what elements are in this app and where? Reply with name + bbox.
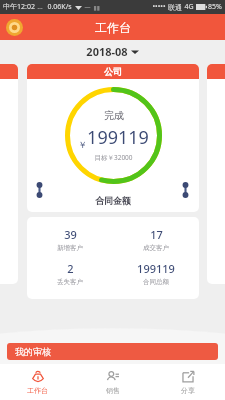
staticText: … — [37, 2, 43, 12]
button[interactable]: 公司 — [27, 64, 199, 212]
button[interactable]: 39 — [27, 227, 113, 252]
staticText: 工作台 — [95, 20, 131, 35]
button[interactable]: 我的审核 — [7, 343, 218, 360]
staticText: 39 — [64, 227, 77, 242]
button[interactable]: 2 — [27, 261, 113, 286]
button[interactable] — [0, 64, 18, 284]
staticText: 199119 — [87, 125, 149, 150]
button[interactable]: 工作台 — [0, 364, 75, 400]
button[interactable]: 分享 — [150, 364, 225, 400]
staticText: 成交客户 — [143, 244, 169, 252]
staticText: 销售 — [106, 386, 120, 395]
staticText: 0.06K/s — [47, 2, 72, 12]
staticText: 85% — [208, 2, 222, 12]
staticText: 199119 — [137, 261, 175, 276]
staticText: 联通 — [168, 3, 182, 12]
button[interactable]: 销售 — [75, 364, 150, 400]
staticText: 我的审核 — [15, 346, 51, 357]
staticText: 目标￥32000 — [94, 153, 133, 162]
button[interactable]: 2018-08 — [78, 42, 147, 61]
staticText: 丢失客户 — [57, 278, 83, 286]
button[interactable] — [207, 64, 225, 284]
button[interactable]: 39 — [27, 217, 199, 299]
staticText: 4G — [184, 2, 194, 12]
staticText: 公司 — [104, 66, 122, 77]
staticText: ￥ — [78, 139, 87, 150]
staticText: 17 — [150, 227, 163, 242]
staticText: 新增客户 — [57, 244, 83, 252]
staticText: 分享 — [181, 386, 195, 395]
button[interactable]: Logo — [6, 19, 23, 36]
staticText: 2 — [67, 261, 74, 276]
staticText: — — [84, 3, 91, 11]
staticText: 中午12:02 — [3, 2, 35, 12]
staticText: 合同总额 — [143, 278, 169, 286]
staticText: 完成 — [104, 109, 124, 122]
staticText: 工作台 — [27, 386, 48, 395]
staticText: 2018-08 — [86, 44, 128, 59]
button[interactable]: 17 — [113, 227, 199, 252]
button[interactable]: 199119 — [113, 261, 199, 286]
staticText: ••••• — [152, 2, 166, 12]
staticText: ▮▮ — [93, 4, 100, 11]
staticText: 合同金额 — [95, 195, 131, 206]
